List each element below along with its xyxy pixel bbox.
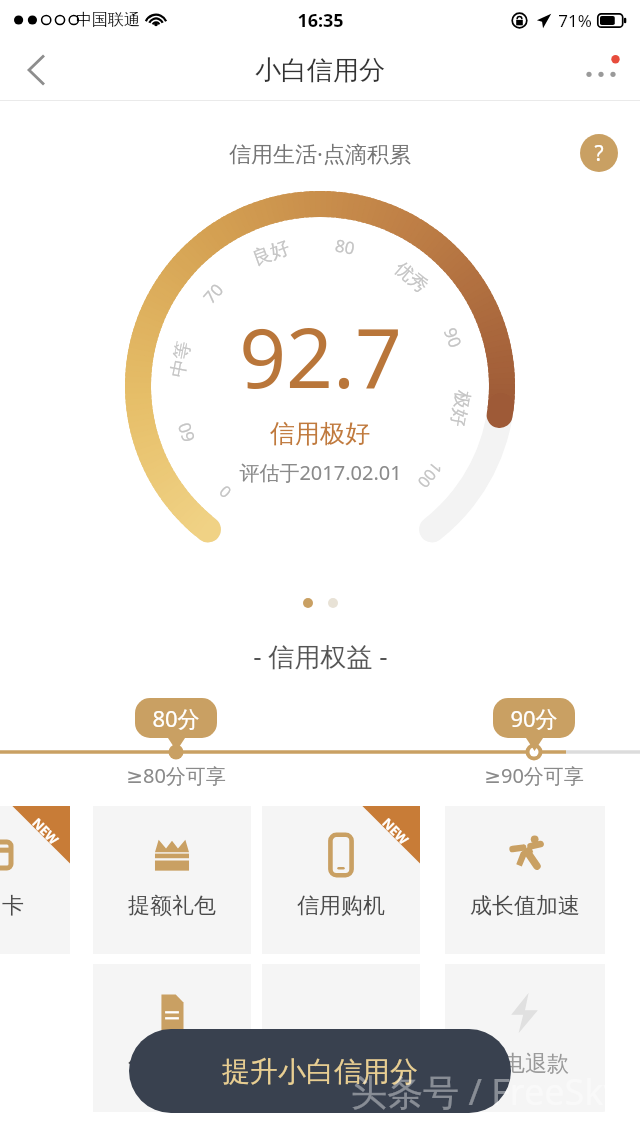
staticText: 92.7: [239, 300, 402, 412]
staticText: 优秀: [390, 257, 432, 298]
button[interactable]: 提额礼包: [93, 806, 251, 954]
button[interactable]: 提升小白信用分: [129, 1029, 511, 1113]
staticText: 80分: [152, 703, 200, 733]
staticText: - 信用权益 -: [253, 638, 388, 674]
button[interactable]: 80分: [135, 698, 217, 738]
staticText: 良好: [249, 235, 293, 271]
staticText: 极好: [446, 389, 474, 428]
button[interactable]: 成长值加速: [445, 806, 605, 954]
staticText: 头条号 / FreeSky: [351, 1067, 622, 1116]
staticText: 71%: [558, 9, 592, 32]
staticText: NEW: [378, 814, 413, 848]
staticText: ≥80分可享: [126, 762, 226, 789]
staticText: ?: [594, 139, 604, 168]
button[interactable]: More options: [572, 41, 630, 99]
button[interactable]: Back: [8, 41, 66, 99]
staticText: 16:35: [297, 8, 344, 33]
staticText: 提升小白信用分: [222, 1054, 418, 1089]
staticText: ≥90分可享: [484, 762, 584, 789]
button[interactable]: 90分: [493, 698, 575, 738]
staticText: 90: [439, 324, 467, 351]
button[interactable]: 信用报告: [93, 964, 251, 1112]
staticText: 90分: [510, 703, 558, 733]
staticText: 中等: [166, 340, 196, 379]
staticText: 0: [214, 480, 236, 503]
staticText: 80: [333, 233, 357, 259]
staticText: 70: [198, 278, 228, 309]
staticText: 100: [413, 457, 447, 493]
staticText: 评估于2017.02.01: [239, 459, 402, 486]
staticText: 60: [172, 419, 200, 446]
staticText: 提额礼包: [128, 892, 216, 920]
button[interactable]: 闪电退款: [445, 964, 605, 1112]
button[interactable]: 信用购机: [262, 806, 420, 954]
staticText: 信用购机: [297, 892, 385, 920]
staticText: 小白信用分: [255, 54, 385, 87]
button[interactable]: Help: [580, 134, 618, 172]
staticText: 小白卡: [0, 892, 24, 920]
staticText: 信用极好: [270, 418, 370, 449]
button[interactable]: 小白卡: [0, 806, 70, 954]
staticText: NEW: [28, 814, 63, 848]
staticText: 成长值加速: [470, 892, 580, 920]
staticText: 中国联通: [76, 10, 140, 30]
staticText: 信用生活·点滴积累: [229, 138, 411, 168]
staticText: 闪电退款: [481, 1050, 569, 1078]
staticText: 信用报告: [128, 1050, 216, 1078]
